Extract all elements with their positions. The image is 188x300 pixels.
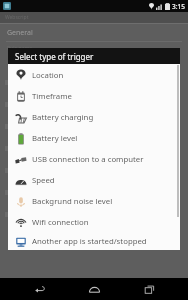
staticText: Rule name <box>7 45 33 52</box>
button[interactable]: Battery level <box>8 128 180 149</box>
button[interactable]: Another app is started/stopped <box>8 233 180 250</box>
staticText: 3:15 <box>172 2 185 11</box>
staticText: Another app is started/stopped <box>32 236 147 247</box>
staticText: Location <box>32 70 64 81</box>
button[interactable]: Timeframe <box>8 86 180 107</box>
staticText: Backgrund noise level <box>32 196 113 207</box>
staticText: Select type of trigger <box>15 51 94 62</box>
button[interactable]: Backgrund noise level <box>8 191 180 212</box>
staticText: Wifi connection <box>32 217 89 228</box>
staticText: Battery level <box>32 133 78 144</box>
button[interactable]: USB connection to a computer <box>8 149 180 170</box>
staticText: Webscript <box>5 14 29 21</box>
button[interactable]: Wifi connection <box>8 212 180 233</box>
staticText: Speed <box>32 175 55 186</box>
button[interactable]: Back <box>25 278 55 300</box>
staticText: when connected to computer <box>59 56 151 65</box>
button[interactable]: Speed <box>8 170 180 191</box>
button[interactable]: Battery charging <box>8 107 180 128</box>
staticText: Open <box>9 56 28 65</box>
button[interactable]: Recent apps <box>134 278 164 300</box>
staticText: USB connection to a computer <box>32 154 144 165</box>
staticText: Timeframe <box>32 91 72 102</box>
button[interactable]: Home <box>79 278 109 300</box>
button[interactable]: Location <box>8 64 180 86</box>
staticText: Battery charging <box>32 112 94 123</box>
staticText: General <box>7 28 33 38</box>
staticText: Webscript <box>28 56 59 65</box>
